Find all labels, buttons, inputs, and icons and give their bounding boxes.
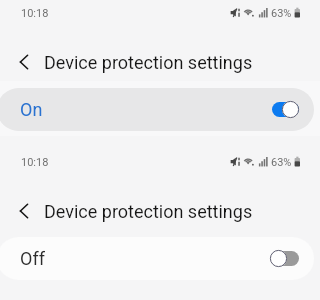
- staticText: 63%: [271, 7, 292, 20]
- staticText: Device protection settings: [44, 201, 253, 222]
- staticText: 10:18: [21, 7, 49, 20]
- button[interactable]: Navigate up: [9, 47, 39, 77]
- staticText: 10:18: [21, 156, 49, 169]
- staticText: Off: [20, 248, 45, 269]
- button[interactable]: On: [0, 88, 314, 131]
- staticText: 63%: [271, 156, 292, 169]
- button[interactable]: Off: [0, 237, 314, 280]
- staticText: On: [20, 99, 43, 120]
- staticText: Device protection settings: [44, 52, 253, 73]
- button[interactable]: Navigate up: [9, 196, 39, 226]
